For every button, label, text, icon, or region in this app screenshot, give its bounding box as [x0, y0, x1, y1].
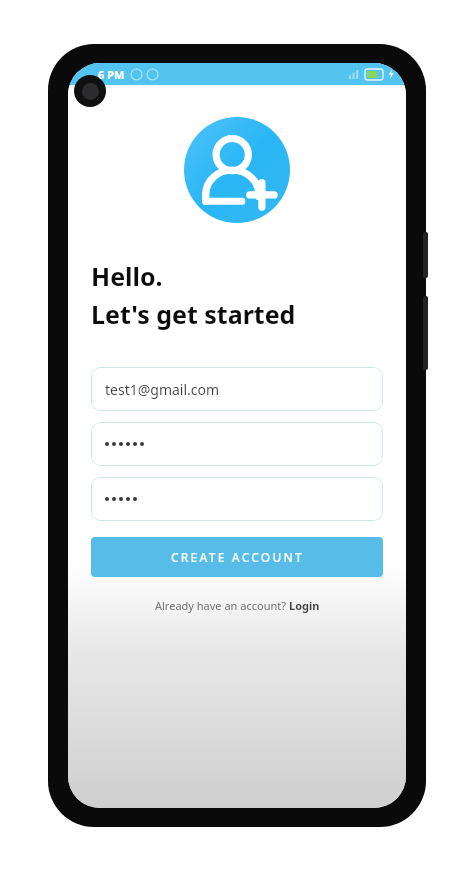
- staticText: 6 PM: [98, 67, 125, 82]
- staticText: test1@gmail.com: [105, 380, 220, 399]
- button[interactable]: [91, 477, 383, 521]
- staticText: Login: [289, 598, 320, 613]
- staticText: Hello.: [91, 259, 163, 293]
- button[interactable]: Login: [289, 598, 320, 613]
- button[interactable]: [91, 422, 383, 466]
- staticText: Let's get started: [91, 297, 296, 331]
- button[interactable]: test1@gmail.com: [91, 367, 383, 411]
- staticText: Already have an account?: [155, 598, 289, 613]
- staticText: CREATE ACCOUNT: [171, 549, 304, 565]
- button[interactable]: CREATE ACCOUNT: [91, 537, 383, 577]
